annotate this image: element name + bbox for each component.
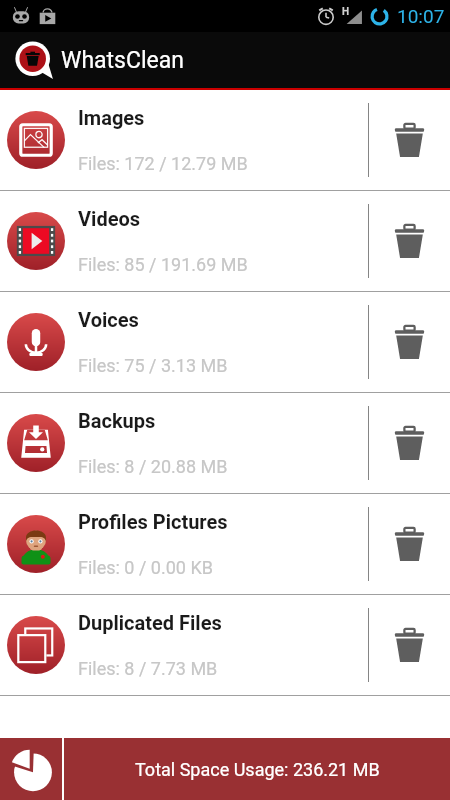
- staticText: Videos: [78, 207, 141, 230]
- staticText: 10:07: [397, 5, 445, 27]
- button[interactable]: WhatsClean: [0, 32, 450, 88]
- button[interactable]: Images: [0, 90, 450, 190]
- button[interactable]: Delete Videos: [369, 191, 450, 291]
- button[interactable]: Delete Profiles Pictures: [369, 494, 450, 594]
- staticText: Files: 0 / 0.00 KB: [78, 557, 213, 578]
- button[interactable]: Delete Voices: [369, 292, 450, 392]
- staticText: Files: 8 / 7.73 MB: [78, 658, 218, 679]
- button[interactable]: Voices: [0, 292, 450, 392]
- staticText: Voices: [78, 308, 139, 331]
- staticText: WhatsClean: [61, 47, 184, 74]
- button[interactable]: Backups: [0, 393, 450, 493]
- staticText: Total Space Usage: 236.21 MB: [135, 759, 380, 780]
- button[interactable]: Profiles Pictures: [0, 494, 450, 594]
- staticText: Files: 85 / 191.69 MB: [78, 254, 248, 275]
- button[interactable]: Duplicated Files: [0, 595, 450, 695]
- button[interactable]: Total Space Usage: 236.21 MB: [64, 738, 450, 800]
- staticText: H: [342, 6, 350, 18]
- staticText: Duplicated Files: [78, 611, 222, 634]
- button[interactable]: Delete Backups: [369, 393, 450, 493]
- button[interactable]: Statistics: [0, 738, 62, 800]
- staticText: Profiles Pictures: [78, 510, 228, 533]
- staticText: Images: [78, 106, 145, 129]
- button[interactable]: Delete Duplicated Files: [369, 595, 450, 695]
- button[interactable]: Videos: [0, 191, 450, 291]
- staticText: Backups: [78, 409, 156, 432]
- staticText: Files: 172 / 12.79 MB: [78, 153, 248, 174]
- staticText: Files: 75 / 3.13 MB: [78, 355, 228, 376]
- staticText: Files: 8 / 20.88 MB: [78, 456, 228, 477]
- button[interactable]: Delete Images: [369, 90, 450, 190]
